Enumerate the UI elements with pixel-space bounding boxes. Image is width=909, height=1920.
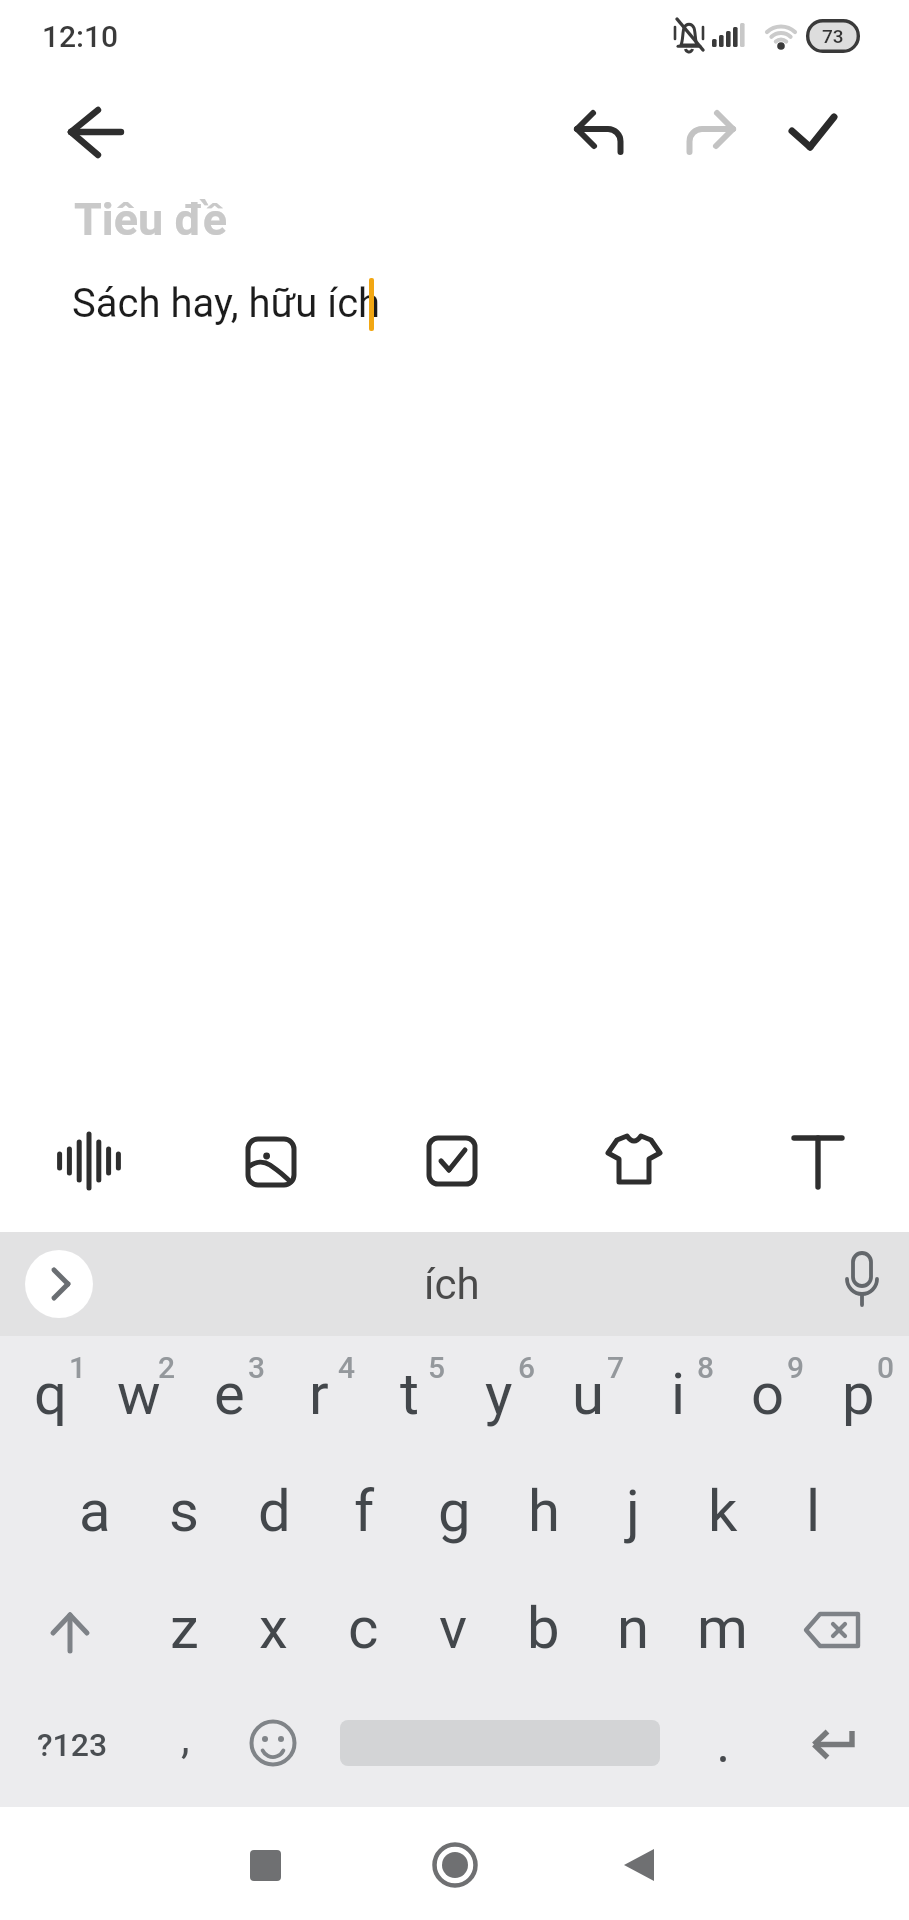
button[interactable] bbox=[570, 105, 630, 160]
staticText: l bbox=[806, 1477, 821, 1545]
staticText: 0 bbox=[877, 1350, 895, 1385]
button[interactable] bbox=[25, 1250, 93, 1318]
button[interactable]: r bbox=[275, 1339, 363, 1449]
button[interactable] bbox=[680, 105, 740, 160]
button[interactable]: ?123 bbox=[17, 1710, 127, 1780]
staticText: 9 bbox=[787, 1350, 805, 1385]
button[interactable]: o bbox=[724, 1339, 812, 1449]
staticText: ích bbox=[424, 1260, 480, 1309]
staticText: v bbox=[439, 1594, 468, 1662]
button[interactable]: , bbox=[155, 1703, 215, 1773]
staticText: h bbox=[528, 1477, 560, 1545]
staticText: t bbox=[400, 1360, 419, 1428]
staticText: z bbox=[170, 1594, 199, 1662]
staticText: m bbox=[697, 1594, 748, 1662]
staticText: e bbox=[214, 1360, 245, 1428]
staticText: d bbox=[258, 1477, 291, 1545]
button[interactable] bbox=[622, 1848, 662, 1884]
staticText: x bbox=[259, 1594, 288, 1662]
staticText: 2 bbox=[158, 1350, 176, 1385]
button[interactable] bbox=[242, 1133, 298, 1189]
staticText: 4 bbox=[338, 1350, 356, 1385]
button[interactable]: Tiêu đề bbox=[74, 193, 228, 246]
button[interactable]: m bbox=[678, 1573, 766, 1683]
button[interactable] bbox=[605, 1132, 665, 1190]
button[interactable]: f bbox=[320, 1456, 408, 1566]
staticText: Tiêu đề bbox=[74, 193, 228, 246]
button[interactable]: i bbox=[634, 1339, 722, 1449]
staticText: j bbox=[626, 1477, 640, 1545]
button[interactable] bbox=[46, 1606, 94, 1654]
button[interactable]: Sách hay, hữu ích bbox=[72, 280, 381, 327]
staticText: q bbox=[34, 1360, 67, 1428]
button[interactable] bbox=[426, 1135, 478, 1187]
staticText: 3 bbox=[248, 1350, 266, 1385]
button[interactable]: h bbox=[500, 1456, 588, 1566]
staticText: , bbox=[181, 1712, 190, 1764]
button[interactable] bbox=[250, 1850, 281, 1881]
staticText: c bbox=[348, 1594, 379, 1662]
button[interactable] bbox=[802, 1608, 864, 1652]
button[interactable]: c bbox=[319, 1573, 407, 1683]
button[interactable] bbox=[431, 1841, 479, 1889]
button[interactable] bbox=[247, 1717, 299, 1769]
staticText: s bbox=[169, 1477, 199, 1545]
button[interactable]: ích bbox=[362, 1244, 542, 1324]
button[interactable]: p bbox=[814, 1339, 902, 1449]
button[interactable]: w bbox=[95, 1339, 183, 1449]
staticText: ?123 bbox=[37, 1726, 108, 1764]
staticText: g bbox=[438, 1477, 471, 1545]
button[interactable]: y bbox=[455, 1339, 543, 1449]
staticText: Sách hay, hữu ích bbox=[72, 280, 381, 327]
button[interactable]: g bbox=[410, 1456, 498, 1566]
staticText: o bbox=[751, 1360, 785, 1428]
button[interactable]: u bbox=[544, 1339, 632, 1449]
button[interactable]: s bbox=[140, 1456, 228, 1566]
staticText: 12:10 bbox=[42, 19, 119, 54]
button[interactable]: n bbox=[589, 1573, 677, 1683]
button[interactable]: k bbox=[679, 1456, 767, 1566]
button[interactable]: d bbox=[230, 1456, 318, 1566]
staticText: a bbox=[79, 1477, 111, 1545]
button[interactable] bbox=[703, 1739, 743, 1779]
staticText: k bbox=[708, 1477, 738, 1545]
staticText: f bbox=[354, 1477, 375, 1545]
staticText: 8 bbox=[697, 1350, 715, 1385]
staticText: y bbox=[485, 1360, 513, 1428]
staticText: 1 bbox=[69, 1350, 87, 1385]
button[interactable] bbox=[60, 95, 130, 165]
button[interactable] bbox=[840, 1250, 884, 1318]
button[interactable] bbox=[790, 1132, 846, 1190]
staticText: b bbox=[527, 1594, 560, 1662]
staticText: i bbox=[671, 1360, 686, 1428]
button[interactable]: e bbox=[185, 1339, 273, 1449]
staticText: 6 bbox=[518, 1350, 536, 1385]
staticText: p bbox=[842, 1360, 875, 1428]
button[interactable]: l bbox=[769, 1456, 857, 1566]
staticText: u bbox=[572, 1360, 604, 1428]
staticText: 5 bbox=[428, 1350, 446, 1385]
button[interactable] bbox=[785, 105, 845, 155]
staticText: n bbox=[617, 1594, 650, 1662]
button[interactable]: t bbox=[365, 1339, 453, 1449]
button[interactable]: x bbox=[229, 1573, 317, 1683]
staticText: 73 bbox=[822, 25, 844, 47]
button[interactable] bbox=[57, 1130, 121, 1192]
button[interactable]: q bbox=[6, 1339, 94, 1449]
staticText: 7 bbox=[607, 1350, 625, 1385]
button[interactable]: v bbox=[409, 1573, 497, 1683]
staticText: r bbox=[309, 1360, 329, 1428]
button[interactable]: z bbox=[140, 1573, 228, 1683]
button[interactable]: j bbox=[589, 1456, 677, 1566]
button[interactable] bbox=[806, 1722, 862, 1770]
button[interactable]: b bbox=[499, 1573, 587, 1683]
staticText: w bbox=[117, 1360, 161, 1428]
button[interactable]: a bbox=[51, 1456, 139, 1566]
